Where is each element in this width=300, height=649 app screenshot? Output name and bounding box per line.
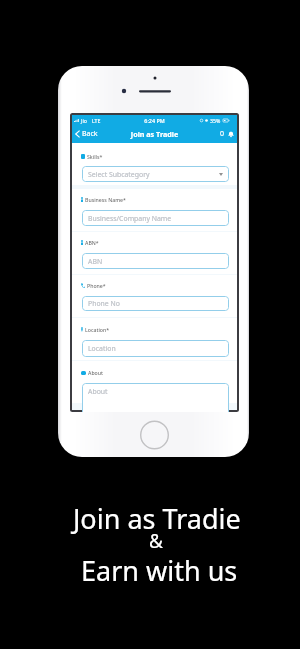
button[interactable]: Notifications (220, 129, 234, 139)
staticText: LTE (92, 117, 101, 124)
button[interactable]: Select Subcategory (82, 166, 229, 182)
staticText: ABN (88, 257, 103, 266)
staticText: Business/Company Name (88, 214, 172, 223)
staticText: Earn with us (81, 552, 238, 589)
staticText: Skills* (87, 153, 103, 160)
staticText: 6:24 PM (72, 117, 237, 124)
staticText: 35% (210, 117, 221, 124)
button[interactable]: Business/Company Name (82, 210, 229, 226)
staticText: Location* (85, 326, 110, 333)
button[interactable]: Location (82, 340, 229, 357)
staticText: Select Subcategory (88, 170, 150, 179)
staticText: Phone No (88, 299, 120, 308)
staticText: About (88, 387, 108, 396)
staticText: About (88, 369, 104, 376)
staticText: Phone* (87, 282, 106, 289)
staticText: ABN* (85, 239, 99, 246)
button[interactable]: ABN (82, 253, 229, 269)
button[interactable]: About (82, 383, 229, 412)
staticText: Back (82, 129, 98, 139)
staticText: Join as Tradie (73, 500, 241, 537)
staticText: & (149, 528, 163, 554)
staticText: Jio (81, 117, 87, 124)
staticText: Business Name* (85, 196, 126, 203)
staticText: Join as Tradie (72, 129, 237, 139)
button[interactable]: Phone No (82, 296, 229, 311)
staticText: Location (88, 344, 116, 353)
staticText: 0 (220, 129, 225, 139)
button[interactable]: Back (75, 129, 98, 139)
